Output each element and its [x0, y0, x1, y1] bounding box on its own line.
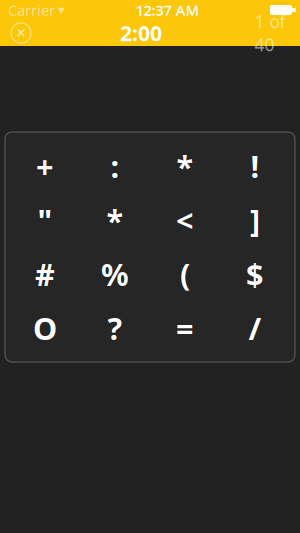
staticText: 12:37 AM — [135, 0, 199, 20]
staticText: = — [176, 308, 194, 348]
staticText: + — [36, 146, 54, 186]
staticText: ( — [180, 254, 190, 294]
staticText: " — [37, 200, 52, 240]
staticText: Carrier — [8, 0, 55, 20]
staticText: ? — [107, 308, 122, 348]
staticText: 2:00 — [120, 19, 162, 47]
staticText: $ — [246, 254, 264, 294]
staticText: ] — [250, 200, 260, 240]
staticText: O — [33, 308, 57, 348]
button[interactable]: Close — [4, 20, 38, 46]
staticText: # — [35, 254, 55, 294]
staticText: : — [110, 146, 119, 186]
staticText: ▾ — [58, 2, 65, 17]
staticText: * — [176, 146, 193, 186]
staticText: 1 of 40 — [254, 10, 285, 56]
staticText: ! — [250, 146, 259, 186]
staticText: / — [248, 308, 261, 348]
staticText: < — [176, 200, 194, 240]
staticText: * — [106, 200, 123, 240]
staticText: ✕ — [15, 25, 26, 40]
staticText: % — [101, 254, 129, 294]
